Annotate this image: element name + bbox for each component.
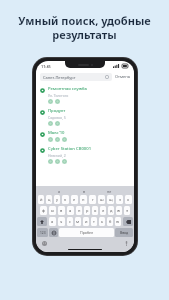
staticText: Отмена [115, 74, 130, 79]
staticText: э [126, 208, 128, 213]
staticText: ю [116, 219, 120, 224]
button[interactable]: Санкт-Петербург [40, 73, 112, 81]
staticText: ь [101, 219, 104, 224]
button[interactable]: з [116, 195, 123, 204]
staticText: н [82, 197, 85, 202]
button[interactable]: э [124, 206, 130, 215]
button[interactable]: Backspace [123, 217, 133, 226]
button[interactable]: в [58, 206, 65, 215]
button[interactable]: а [67, 206, 74, 215]
button[interactable]: Shift [37, 217, 47, 226]
staticText: Продукт [48, 108, 66, 114]
staticText: 123 [40, 231, 46, 235]
staticText: Пробел [80, 230, 94, 235]
button[interactable]: и [83, 217, 89, 226]
staticText: щ [109, 197, 113, 202]
button[interactable]: я [58, 189, 61, 194]
button[interactable]: Пробел [59, 228, 114, 237]
staticText: к [64, 197, 67, 202]
staticText: о [94, 208, 97, 213]
button[interactable]: р [84, 206, 90, 215]
button[interactable]: ы [49, 206, 56, 215]
button[interactable]: ш [98, 195, 105, 204]
button[interactable]: м [75, 217, 81, 226]
button[interactable]: о [92, 206, 98, 215]
staticText: ы [51, 208, 55, 213]
staticText: не [107, 189, 112, 194]
button[interactable]: Ввод [115, 228, 133, 237]
button[interactable]: ф [40, 206, 47, 215]
staticText: 11:45 [41, 64, 51, 69]
button[interactable]: не [107, 189, 112, 194]
staticText: и [85, 219, 88, 224]
button[interactable]: б [107, 217, 113, 226]
button[interactable]: я [49, 217, 56, 226]
staticText: Умный поиск, удобные результаты [14, 13, 155, 42]
staticText: Санкт-Петербург [43, 75, 105, 80]
staticText: й [40, 197, 43, 202]
button[interactable]: Cyber Station СВ0001 [40, 144, 130, 166]
staticText: ж [117, 208, 121, 213]
other: Clear [105, 75, 109, 79]
staticText: а [69, 208, 72, 213]
button[interactable]: д [108, 206, 114, 215]
staticText: з [119, 197, 121, 202]
button[interactable]: т [91, 217, 97, 226]
button[interactable]: ь [99, 217, 105, 226]
staticText: в [83, 189, 86, 194]
button[interactable]: ч [58, 217, 65, 226]
staticText: я [51, 219, 54, 224]
staticText: м [76, 219, 80, 224]
staticText: ш [100, 197, 104, 202]
button[interactable]: п [76, 206, 82, 215]
staticText: ц [48, 197, 51, 202]
staticText: Ремонтная служба [48, 86, 87, 92]
staticText: х [127, 197, 130, 202]
button[interactable]: ю [115, 217, 121, 226]
button[interactable]: щ [107, 195, 114, 204]
button[interactable]: в [83, 189, 86, 194]
staticText: Садовая, 5 [48, 115, 66, 120]
button[interactable]: ц [46, 195, 52, 204]
button[interactable]: х [125, 195, 132, 204]
staticText: ч [60, 219, 63, 224]
button[interactable]: н [80, 195, 87, 204]
staticText: е [73, 197, 76, 202]
button[interactable]: Ремонтная служба [40, 84, 130, 106]
button[interactable]: Продукт [40, 106, 130, 128]
button[interactable]: 123 [37, 228, 48, 237]
staticText: Ул. Толстого [48, 93, 69, 98]
staticText: г [92, 197, 94, 202]
staticText: в [60, 208, 63, 213]
button[interactable]: Voice input [123, 240, 129, 246]
button[interactable]: Emoji [41, 240, 47, 246]
staticText: Ввод [120, 230, 129, 235]
staticText: т [93, 219, 95, 224]
staticText: Невский, 2 [48, 153, 66, 158]
button[interactable]: Change language [49, 228, 58, 237]
button[interactable]: й [38, 195, 44, 204]
button[interactable]: ж [116, 206, 122, 215]
staticText: Макс'10 [48, 130, 65, 136]
staticText: р [86, 208, 89, 213]
button[interactable]: Отмена [115, 74, 130, 79]
button[interactable]: Макс'10 [40, 128, 130, 144]
button[interactable]: л [100, 206, 106, 215]
button[interactable]: е [71, 195, 78, 204]
staticText: с [69, 219, 71, 224]
button[interactable]: к [62, 195, 69, 204]
button[interactable]: г [89, 195, 96, 204]
staticText: Cyber Station СВ0001 [48, 146, 92, 152]
staticText: д [110, 208, 113, 213]
button[interactable]: с [67, 217, 73, 226]
staticText: у [56, 197, 59, 202]
staticText: ф [42, 208, 45, 213]
button[interactable]: у [54, 195, 60, 204]
staticText: л [102, 208, 105, 213]
staticText: б [109, 219, 112, 224]
staticText: п [78, 208, 81, 213]
staticText: я [58, 189, 61, 194]
